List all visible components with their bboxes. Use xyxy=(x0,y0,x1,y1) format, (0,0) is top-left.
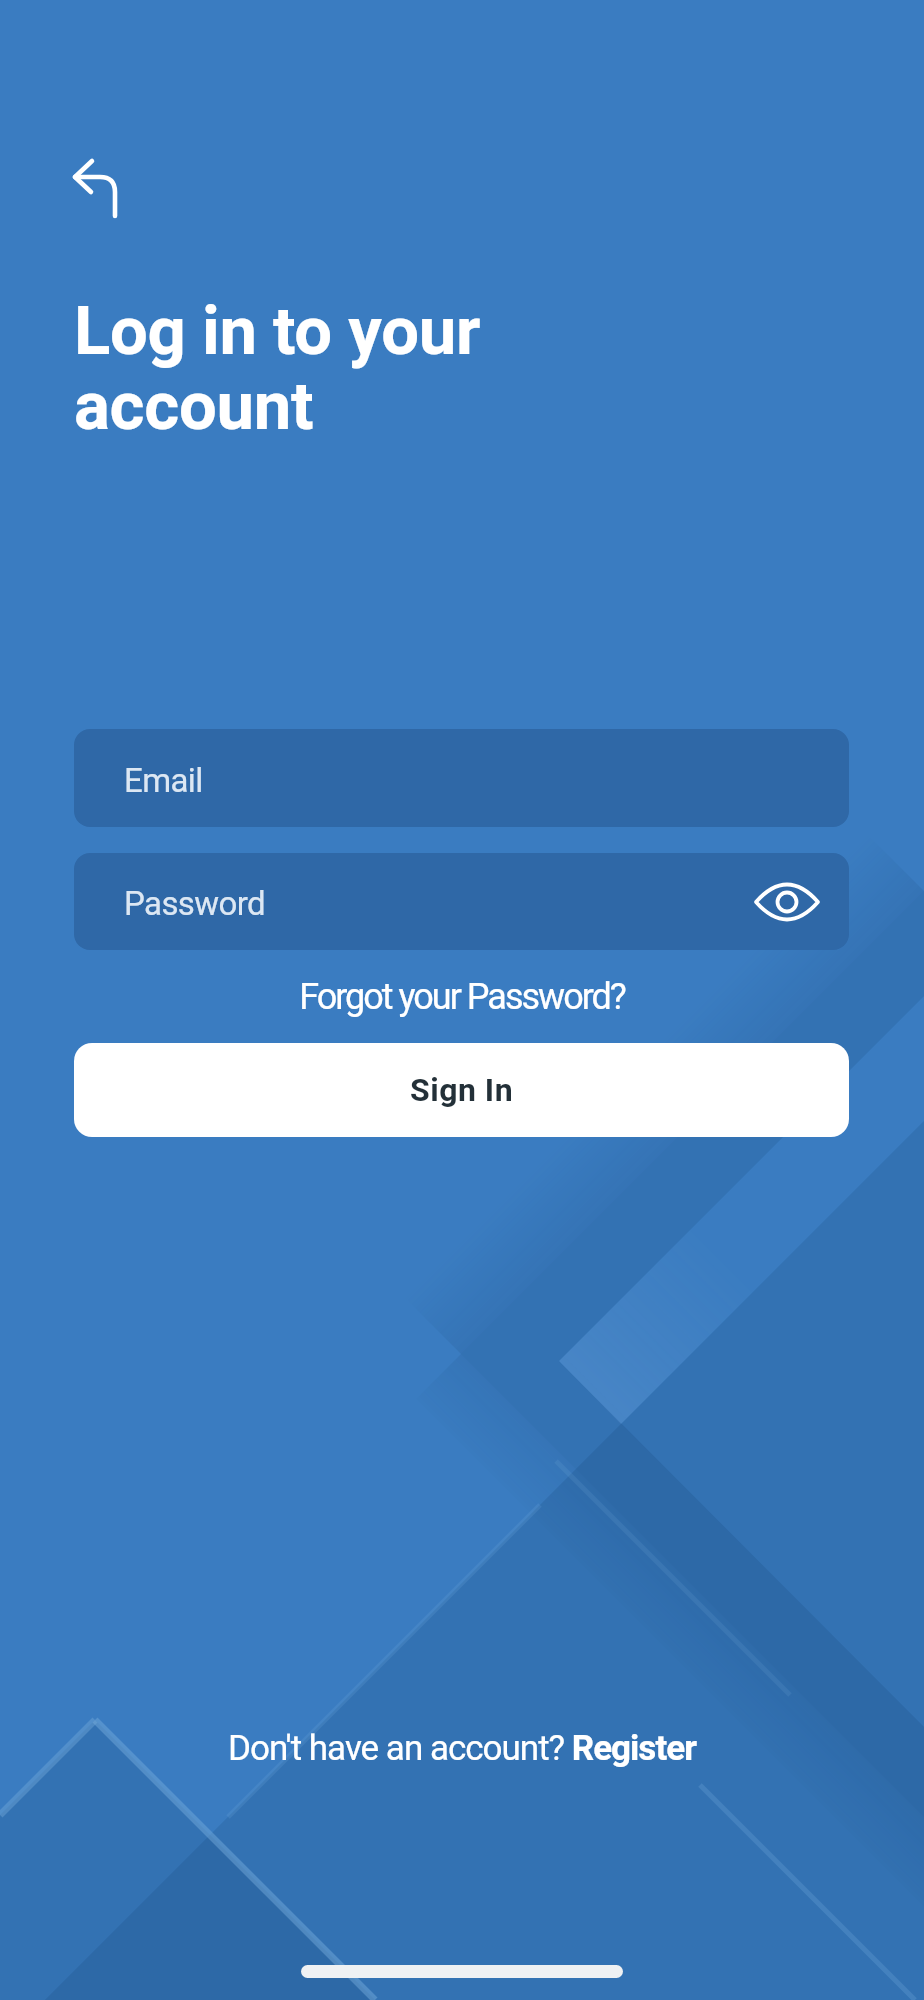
button[interactable]: Don't have an account? Register xyxy=(0,1728,924,1769)
button[interactable]: Forgot your Password? xyxy=(0,976,924,1018)
button[interactable]: Email xyxy=(74,729,849,827)
staticText: Sign In xyxy=(410,1071,514,1109)
staticText: Log in to your xyxy=(74,292,481,371)
button[interactable] xyxy=(57,140,133,224)
staticText: Email xyxy=(124,761,203,800)
button[interactable]: Password xyxy=(74,853,849,950)
button[interactable] xyxy=(753,872,821,932)
staticText: Password xyxy=(124,884,265,923)
staticText: account xyxy=(74,367,314,446)
button[interactable]: Sign In xyxy=(74,1043,849,1137)
